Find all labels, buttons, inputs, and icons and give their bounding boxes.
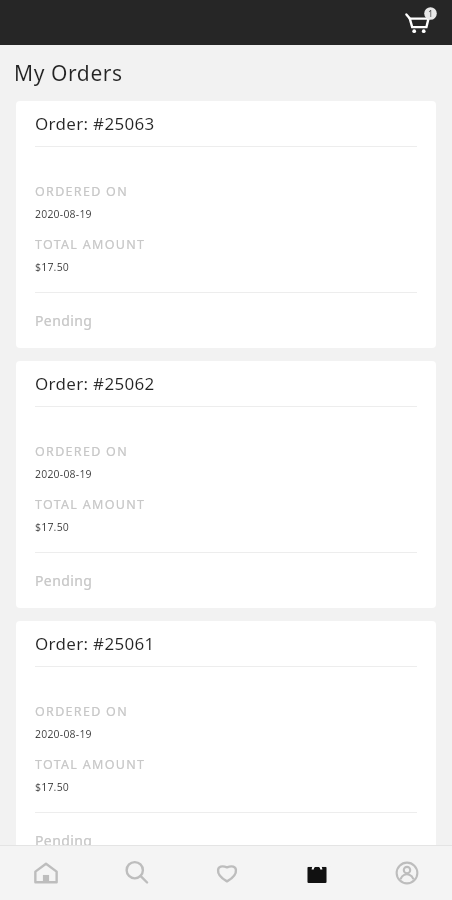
staticText: $17.50: [35, 780, 70, 794]
staticText: 2020-08-19: [35, 207, 92, 221]
staticText: ORDERED ON: [35, 443, 128, 460]
staticText: 1: [428, 8, 433, 19]
staticText: TOTAL AMOUNT: [35, 496, 146, 513]
staticText: ORDERED ON: [35, 703, 128, 720]
button[interactable]: Orders: [272, 846, 362, 900]
staticText: Pending: [35, 311, 93, 330]
staticText: Order: #25062: [35, 372, 155, 395]
staticText: ORDERED ON: [35, 183, 128, 200]
staticText: TOTAL AMOUNT: [35, 236, 146, 253]
button[interactable]: Home: [0, 846, 91, 900]
staticText: $17.50: [35, 260, 70, 274]
button[interactable]: Order: #25061: [16, 621, 436, 845]
button[interactable]: Order: #25062: [16, 361, 436, 608]
staticText: Pending: [35, 571, 93, 590]
staticText: Pending: [35, 831, 93, 845]
staticText: $17.50: [35, 520, 70, 534]
staticText: 2020-08-19: [35, 727, 92, 741]
button[interactable]: Account: [362, 846, 452, 900]
button[interactable]: Cart, 1 item: [400, 2, 442, 44]
staticText: Order: #25061: [35, 632, 155, 655]
staticText: TOTAL AMOUNT: [35, 756, 146, 773]
staticText: Order: #25063: [35, 112, 155, 135]
button[interactable]: Search: [91, 846, 182, 900]
staticText: 2020-08-19: [35, 467, 92, 481]
staticText: My Orders: [14, 59, 123, 88]
button[interactable]: Order: #25063: [16, 101, 436, 348]
button[interactable]: Favorites: [182, 846, 272, 900]
